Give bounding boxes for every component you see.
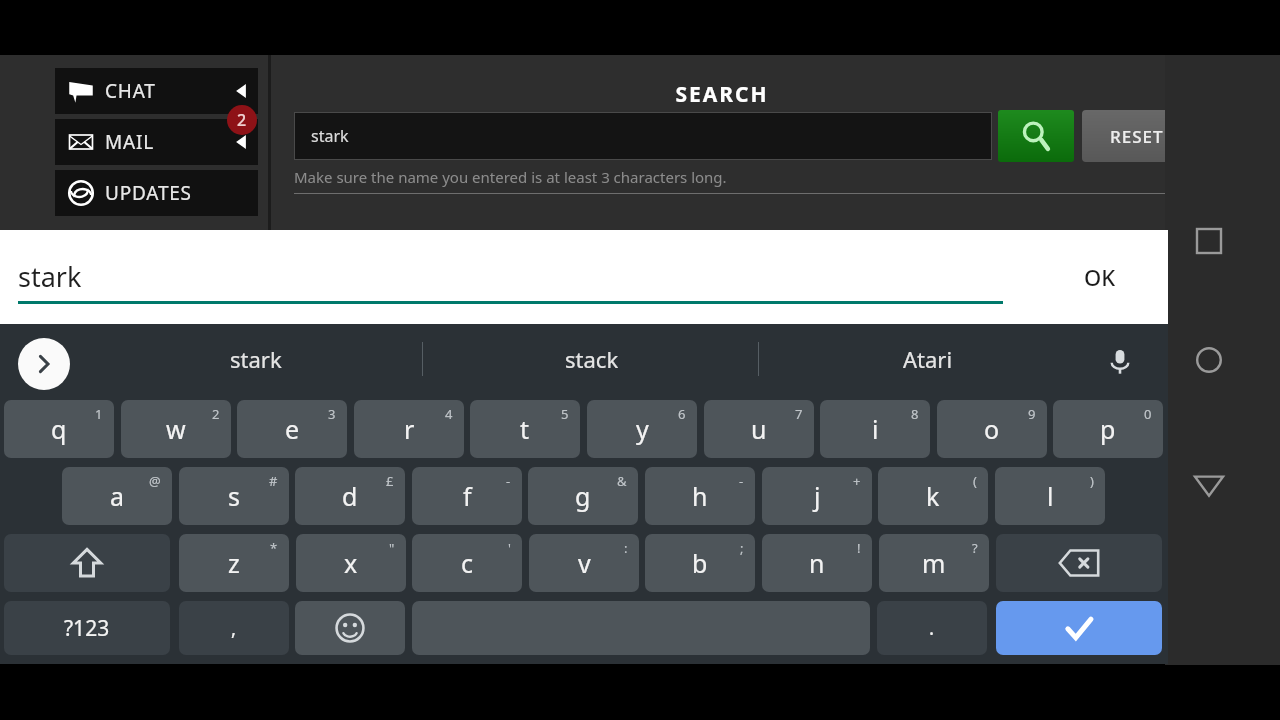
staticText: stark [18, 258, 82, 295]
staticText: l [1047, 479, 1054, 513]
button[interactable]: stark [295, 113, 991, 159]
button[interactable]: Enter [996, 601, 1162, 655]
staticText: a [110, 479, 125, 513]
staticText: : [624, 539, 628, 557]
staticText: , [231, 615, 237, 641]
button[interactable]: q [4, 400, 114, 458]
staticText: 2 [237, 109, 247, 131]
button[interactable]: Emoji [295, 601, 405, 655]
button[interactable]: l [995, 467, 1105, 525]
button[interactable]: Back [1189, 465, 1229, 505]
button[interactable]: d [295, 467, 405, 525]
staticText: MAIL [105, 129, 154, 155]
staticText: v [578, 546, 591, 580]
button[interactable]: RESET [1082, 110, 1230, 162]
staticText: OK [1084, 262, 1116, 292]
staticText: 9 [1028, 405, 1036, 423]
staticText: Atari [903, 344, 953, 374]
button[interactable]: Recents [1189, 221, 1229, 261]
staticText: ? [972, 539, 978, 557]
staticText: m [922, 546, 946, 580]
staticText: 0 [1144, 405, 1152, 423]
staticText: 2 [212, 405, 220, 423]
staticText: o [984, 412, 1000, 446]
button[interactable]: z [179, 534, 289, 592]
button[interactable]: e [237, 400, 347, 458]
staticText: £ [386, 472, 394, 490]
button[interactable]: v [529, 534, 639, 592]
staticText: + [853, 472, 861, 490]
button[interactable]: c [412, 534, 522, 592]
staticText: c [461, 546, 474, 580]
staticText: stack [565, 344, 619, 374]
button[interactable]: stark [88, 324, 424, 394]
staticText: i [872, 412, 879, 446]
button[interactable]: Atari [760, 324, 1096, 394]
button[interactable]: UPDATES [55, 170, 258, 216]
button[interactable]: n [762, 534, 872, 592]
staticText: " [389, 539, 395, 557]
staticText: k [926, 479, 940, 513]
button[interactable]: Shift [4, 534, 170, 592]
button[interactable]: . [877, 601, 987, 655]
button[interactable]: h [645, 467, 755, 525]
button[interactable]: s [179, 467, 289, 525]
button[interactable]: Search [998, 110, 1074, 162]
button[interactable]: t [470, 400, 580, 458]
staticText: - [739, 472, 744, 490]
button[interactable]: i [820, 400, 930, 458]
button[interactable]: stack [424, 324, 760, 394]
staticText: z [228, 546, 240, 580]
staticText: r [404, 412, 415, 446]
staticText: y [636, 412, 649, 446]
staticText: ! [857, 539, 861, 557]
button[interactable]: r [354, 400, 464, 458]
button[interactable]: x [296, 534, 406, 592]
staticText: @ [149, 472, 161, 490]
staticText: stark [230, 344, 282, 374]
staticText: ) [1090, 472, 1094, 490]
staticText: f [463, 479, 472, 513]
button[interactable]: Backspace [996, 534, 1162, 592]
button[interactable]: o [937, 400, 1047, 458]
button[interactable]: a [62, 467, 172, 525]
button[interactable]: 2 [227, 105, 257, 135]
button[interactable]: m [879, 534, 989, 592]
button[interactable]: , [179, 601, 289, 655]
button[interactable]: k [878, 467, 988, 525]
staticText: ; [740, 539, 744, 557]
button[interactable]: CHAT [55, 68, 258, 114]
staticText: CHAT [105, 78, 156, 104]
button[interactable]: w [121, 400, 231, 458]
staticText: 4 [445, 405, 453, 423]
staticText: ' [508, 539, 511, 557]
staticText: n [809, 546, 825, 580]
staticText: ?123 [64, 614, 110, 643]
staticText: 5 [561, 405, 569, 423]
button[interactable]: p [1053, 400, 1163, 458]
staticText: ( [973, 472, 977, 490]
button[interactable]: OK [1074, 252, 1126, 302]
staticText: 8 [911, 405, 919, 423]
button[interactable]: b [645, 534, 755, 592]
staticText: e [285, 412, 300, 446]
button[interactable]: More suggestions [18, 338, 70, 390]
button[interactable]: f [412, 467, 522, 525]
staticText: t [520, 412, 530, 446]
staticText: & [617, 472, 627, 490]
button[interactable]: u [704, 400, 814, 458]
staticText: u [751, 412, 767, 446]
staticText: * [270, 539, 278, 557]
button[interactable]: Home [1189, 340, 1229, 380]
button[interactable]: MAIL [55, 119, 258, 165]
button[interactable]: ?123 [4, 601, 170, 655]
button[interactable]: j [762, 467, 872, 525]
button[interactable]: y [587, 400, 697, 458]
staticText: p [1100, 412, 1116, 446]
button[interactable]: Voice input [1096, 338, 1144, 386]
button[interactable]: g [528, 467, 638, 525]
staticText: h [692, 479, 708, 513]
staticText: j [814, 479, 821, 513]
